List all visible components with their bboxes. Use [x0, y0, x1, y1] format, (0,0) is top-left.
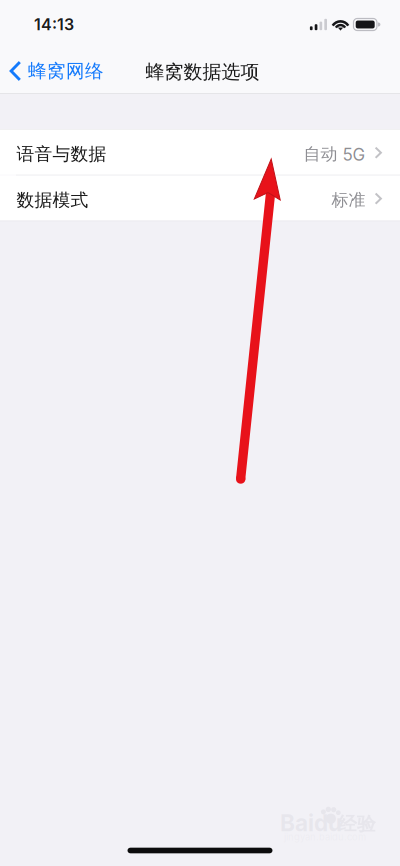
staticText: Baidu: [280, 809, 342, 837]
staticText: 标准: [331, 189, 365, 211]
staticText: 数据模式: [16, 189, 88, 211]
staticText: 14:13: [34, 15, 74, 34]
button[interactable]: 蜂窝网络: [0, 49, 114, 93]
staticText: 经验: [338, 812, 376, 836]
staticText: 语音与数据: [16, 143, 106, 165]
staticText: 蜂窝网络: [28, 59, 104, 83]
staticText: 自动 5G: [303, 143, 365, 165]
staticText: 蜂窝数据选项: [145, 60, 259, 84]
button[interactable]: 数据模式: [0, 176, 400, 221]
button[interactable]: 语音与数据: [0, 130, 400, 175]
